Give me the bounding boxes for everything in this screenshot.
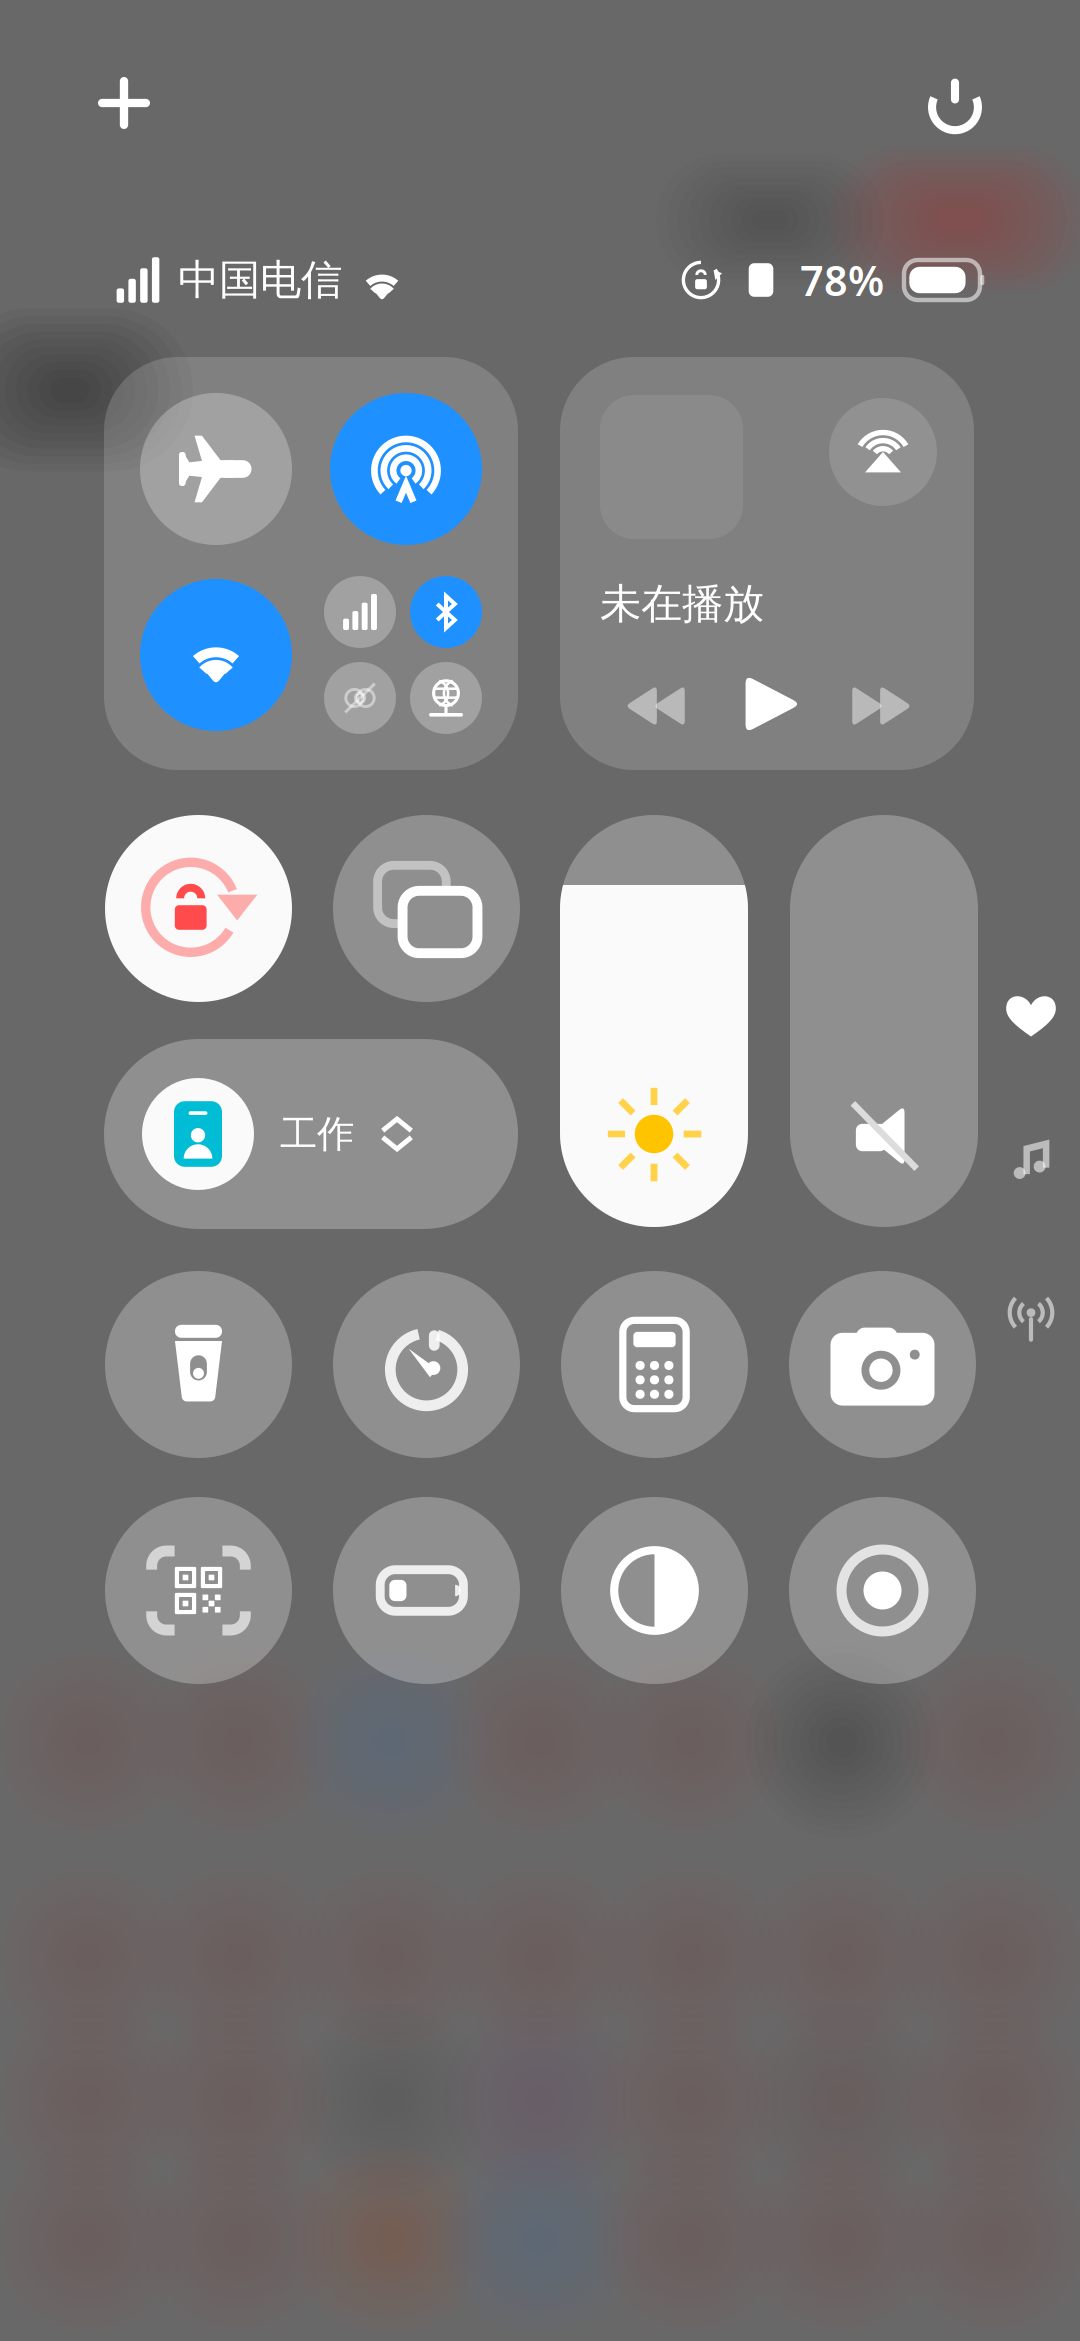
button[interactable]: Timer <box>333 1271 520 1458</box>
button[interactable]: Personal Hotspot <box>324 662 396 734</box>
button[interactable]: AirPlay <box>829 398 937 506</box>
staticText: 中国电信 <box>178 255 342 305</box>
staticText: 工作 <box>280 1111 354 1157</box>
button[interactable]: Fast Forward <box>851 685 913 726</box>
button[interactable]: Camera <box>789 1271 976 1458</box>
button[interactable]: Brightness <box>560 815 748 1227</box>
staticText: 78% <box>800 253 884 307</box>
button[interactable]: Airplane Mode <box>140 393 292 545</box>
button[interactable]: Screen Recording <box>789 1497 976 1684</box>
button[interactable]: Focus — Work <box>104 1039 518 1229</box>
button[interactable]: Rotation Lock <box>105 815 292 1002</box>
button[interactable]: Code Scanner <box>105 1497 292 1684</box>
staticText: 未在播放 <box>600 579 764 629</box>
button[interactable]: Bluetooth <box>410 576 482 648</box>
button[interactable]: Cellular Data <box>324 576 396 648</box>
button[interactable]: Dark Mode <box>561 1497 748 1684</box>
button[interactable]: Power <box>928 77 982 131</box>
button[interactable]: Play <box>742 674 802 734</box>
button[interactable]: Volume <box>790 815 978 1227</box>
button[interactable]: Calculator <box>561 1271 748 1458</box>
button[interactable]: Rewind <box>624 685 686 726</box>
button[interactable]: Add control <box>98 77 150 129</box>
button[interactable]: VPN <box>410 662 482 734</box>
button[interactable]: Low Power Mode <box>333 1497 520 1684</box>
button[interactable]: AirDrop <box>330 393 482 545</box>
button[interactable]: Wi-Fi <box>140 579 292 731</box>
button[interactable]: Flashlight <box>105 1271 292 1458</box>
button[interactable]: Screen Mirroring <box>333 815 520 1002</box>
